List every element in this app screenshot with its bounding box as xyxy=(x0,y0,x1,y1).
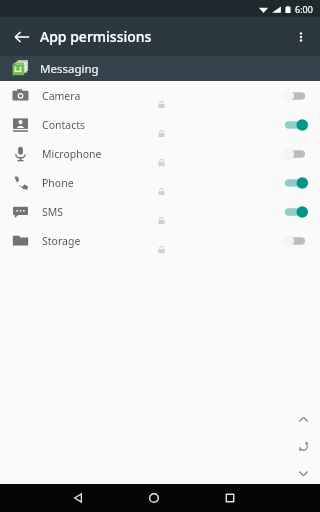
button[interactable]: Refresh xyxy=(292,435,314,457)
button[interactable]: Camera permission toggle xyxy=(281,88,309,104)
staticText: Phone xyxy=(42,176,74,190)
staticText: Microphone xyxy=(42,147,102,161)
button[interactable]: SMS permission toggle xyxy=(281,204,309,220)
button[interactable]: Scroll up xyxy=(292,408,314,430)
staticText: 6:00 xyxy=(295,3,313,15)
button[interactable]: Microphone xyxy=(0,139,320,168)
button[interactable]: Home xyxy=(136,484,172,512)
button[interactable]: Back xyxy=(6,21,38,53)
staticText: Contacts xyxy=(42,118,86,132)
button[interactable]: Phone permission toggle xyxy=(281,175,309,191)
button[interactable]: Storage permission toggle xyxy=(281,233,309,249)
button[interactable]: Messaging xyxy=(0,56,320,81)
button[interactable]: Back xyxy=(60,484,96,512)
button[interactable]: Contacts xyxy=(0,110,320,139)
button[interactable]: Contacts permission toggle xyxy=(281,117,309,133)
button[interactable]: Microphone permission toggle xyxy=(281,146,309,162)
staticText: Camera xyxy=(42,89,81,103)
staticText: Storage xyxy=(42,234,81,248)
button[interactable]: SMS xyxy=(0,197,320,226)
button[interactable]: Recent apps xyxy=(212,484,248,512)
staticText: App permissions xyxy=(40,27,152,46)
staticText: SMS xyxy=(42,205,64,219)
staticText: Messaging xyxy=(40,61,99,77)
button[interactable]: Scroll down xyxy=(292,462,314,484)
button[interactable]: Storage xyxy=(0,226,320,255)
button[interactable]: More options xyxy=(286,22,316,52)
button[interactable]: Camera xyxy=(0,81,320,110)
button[interactable]: Phone xyxy=(0,168,320,197)
